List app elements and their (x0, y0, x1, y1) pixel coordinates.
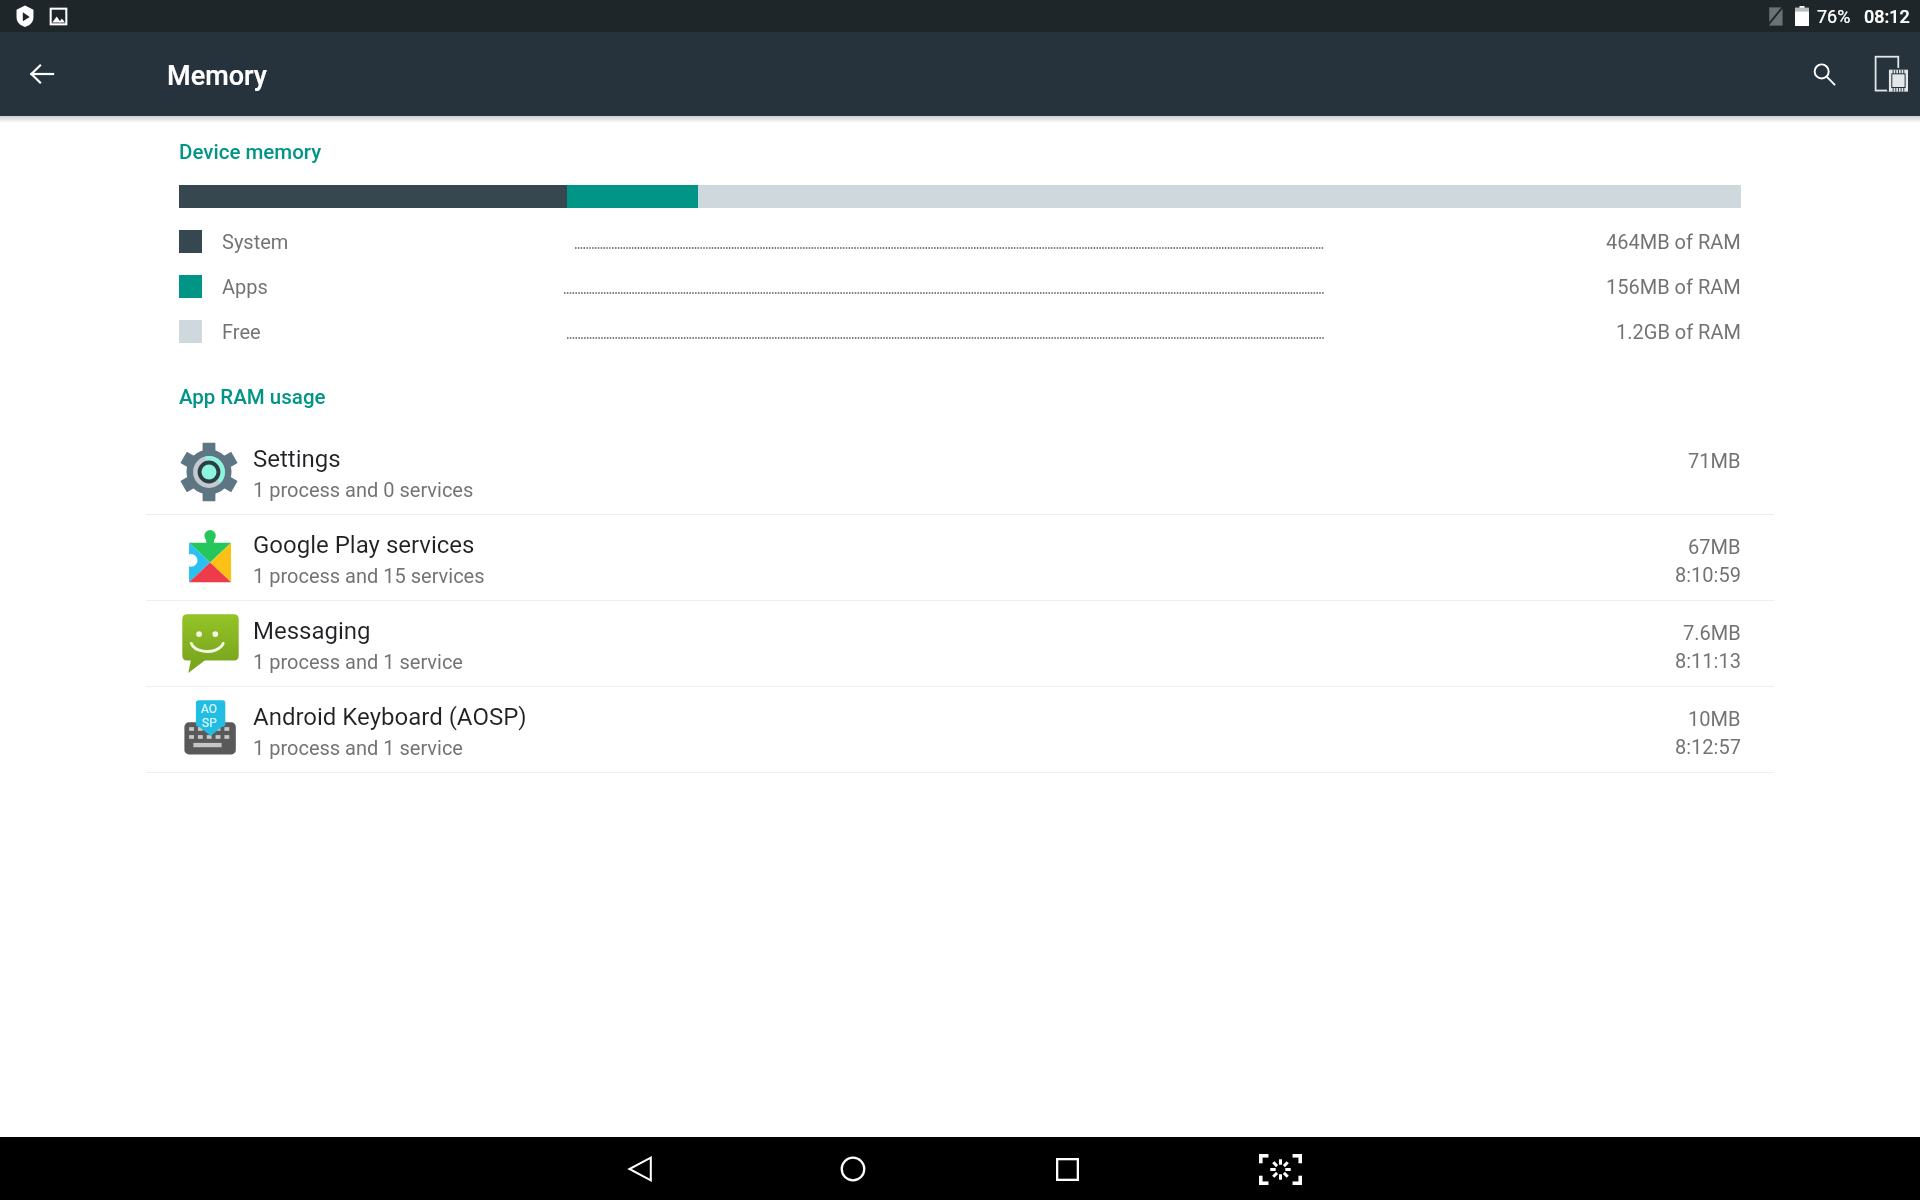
staticText: 156MB of RAM (1606, 275, 1741, 298)
staticText: App RAM usage (179, 385, 326, 409)
staticText: SP (202, 716, 217, 730)
button[interactable]: Home (825, 1141, 881, 1197)
button[interactable]: Google Play services (0, 515, 1920, 600)
staticText: AO (201, 702, 218, 716)
button[interactable]: Recent apps (1039, 1141, 1095, 1197)
staticText: 1 process and 15 services (253, 564, 485, 587)
button[interactable]: Messaging (0, 601, 1920, 686)
staticText: 464MB of RAM (1606, 230, 1741, 253)
staticText: 8:10:59 (1675, 563, 1741, 586)
button[interactable]: Back (612, 1141, 668, 1197)
button[interactable]: Search (1796, 46, 1852, 102)
staticText: 1.2GB of RAM (1616, 320, 1741, 343)
staticText: System (222, 230, 289, 253)
staticText: 7.6MB (1683, 621, 1741, 644)
button[interactable]: AO (0, 687, 1920, 772)
staticText: 76% (1817, 6, 1851, 27)
staticText: Google Play services (253, 531, 475, 559)
staticText: 71MB (1688, 449, 1741, 472)
staticText: Free (222, 320, 261, 343)
staticText: Android Keyboard (AOSP) (253, 703, 527, 731)
staticText: Settings (253, 445, 341, 473)
staticText: 08:12 (1864, 6, 1910, 27)
button[interactable]: Settings (0, 429, 1920, 514)
staticText: 10MB (1688, 707, 1741, 730)
staticText: 8:12:57 (1675, 735, 1741, 758)
staticText: Memory (167, 60, 267, 92)
staticText: Device memory (179, 140, 322, 164)
staticText: Messaging (253, 617, 371, 645)
staticText: 8:11:13 (1675, 649, 1741, 672)
button[interactable]: Memory chip (1862, 46, 1918, 102)
staticText: 1 process and 0 services (253, 478, 474, 501)
button[interactable]: Screenshot (1252, 1141, 1308, 1197)
staticText: Apps (222, 275, 268, 298)
button[interactable]: Navigate up (16, 48, 68, 100)
staticText: 1 process and 1 service (253, 736, 463, 759)
staticText: 67MB (1688, 535, 1741, 558)
staticText: 1 process and 1 service (253, 650, 463, 673)
